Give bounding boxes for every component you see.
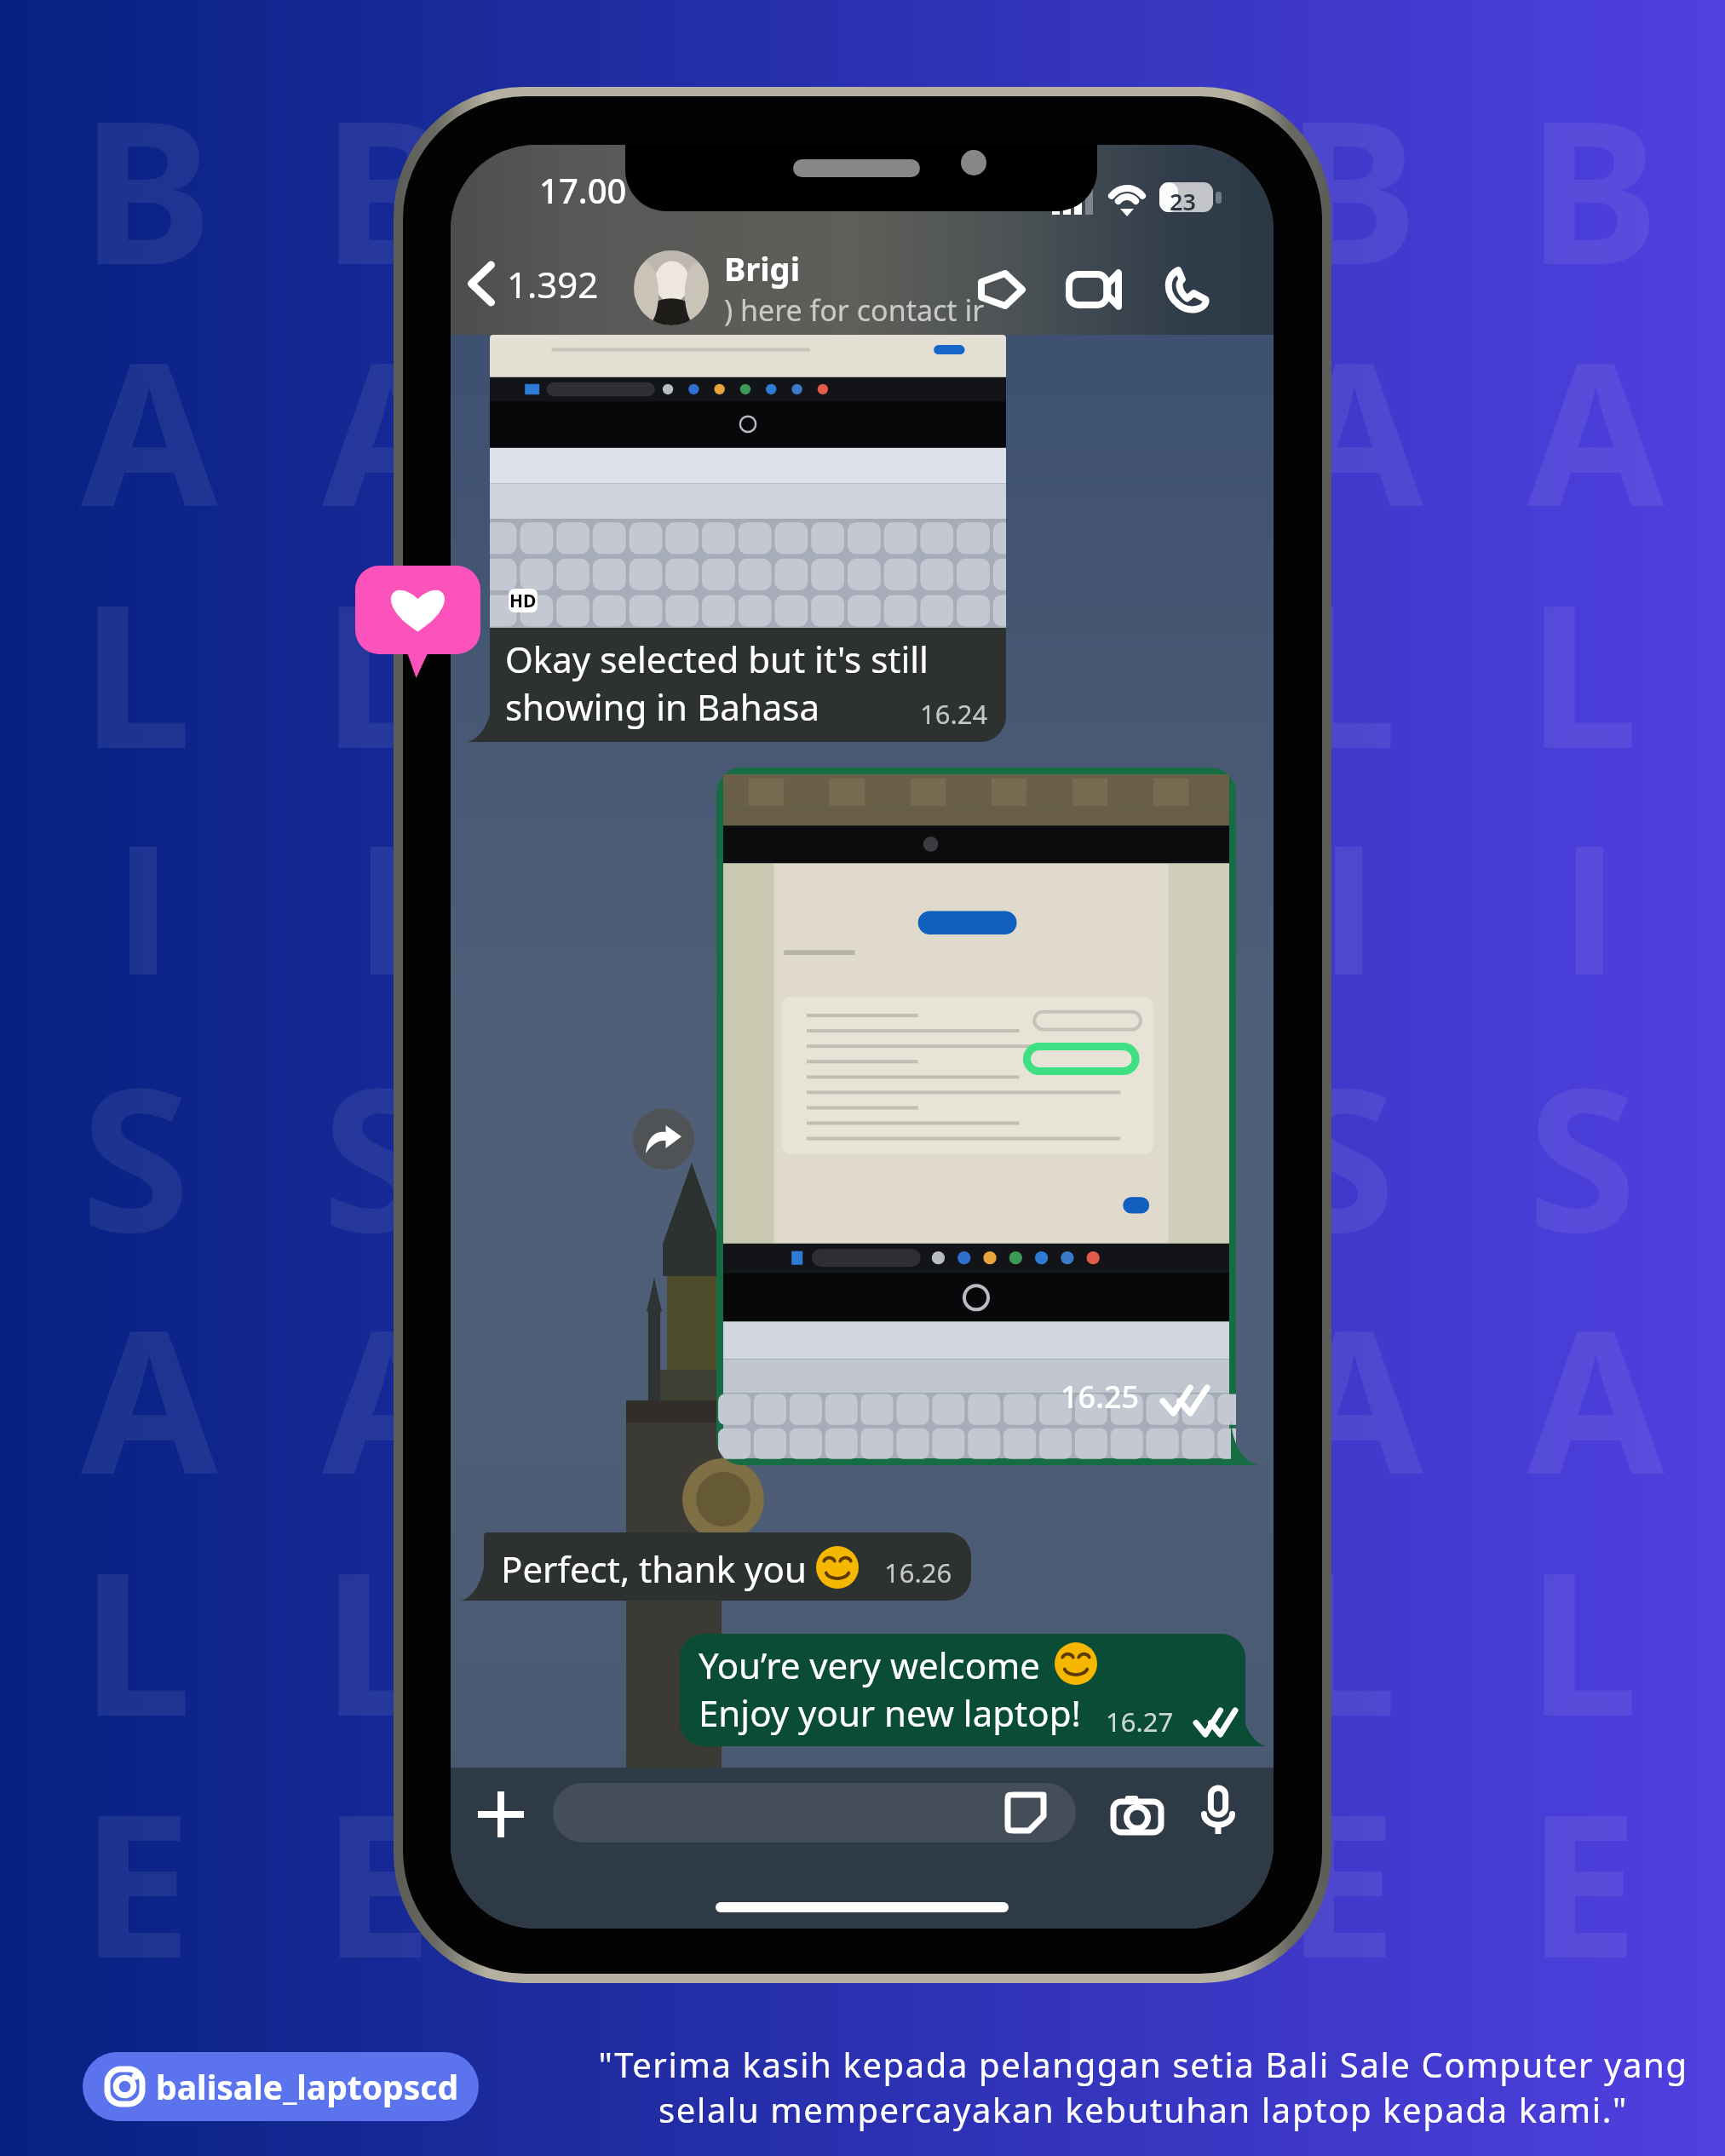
staticText: A [1286, 1262, 1423, 1484]
staticText: A [81, 1262, 218, 1484]
staticText: 16.24 [920, 696, 988, 732]
staticText: A [563, 295, 700, 516]
button[interactable]: Perfect, thank you [484, 1532, 971, 1601]
staticText: L [322, 537, 433, 758]
staticText: B [1286, 53, 1418, 274]
staticText: S [81, 1021, 190, 1242]
staticText: A [1527, 1262, 1665, 1484]
staticText: L [1045, 1504, 1156, 1726]
staticText: Brigi [724, 246, 800, 290]
staticText: balisale_laptopscd [156, 2064, 459, 2109]
staticText: You’re very welcome Enjoy your new lapto… [699, 1641, 1081, 1737]
staticText: E [1527, 1746, 1638, 1968]
staticText: B [322, 53, 454, 274]
staticText: A [804, 295, 941, 516]
staticText: E [81, 1746, 192, 1968]
staticText: A [804, 1262, 941, 1484]
button[interactable]: balisale_laptopscd [83, 2052, 479, 2121]
staticText: 17.00 [539, 167, 627, 213]
button[interactable]: Video call [1056, 259, 1130, 320]
staticText: S [322, 1021, 431, 1242]
staticText: 23 [1170, 186, 1196, 217]
staticText: S [563, 1021, 672, 1242]
staticText: A [563, 1262, 700, 1484]
staticText: L [563, 537, 674, 758]
button[interactable]: Like [355, 566, 480, 678]
staticText: S [1527, 1021, 1636, 1242]
staticText: 16.27 [1106, 1704, 1174, 1739]
staticText: L [81, 1504, 192, 1726]
button[interactable]: Brigi [634, 245, 985, 331]
staticText: Okay selected but it's still showing in … [505, 635, 929, 731]
staticText: HD [509, 589, 537, 612]
staticText: L [1286, 537, 1397, 758]
staticText: B [1045, 53, 1177, 274]
staticText: L [1527, 1504, 1638, 1726]
staticText: Perfect, thank you [501, 1544, 807, 1593]
button[interactable]: Labels [965, 259, 1037, 320]
staticText: A [322, 295, 459, 516]
staticText: A [1045, 295, 1182, 516]
button[interactable]: 16.25 [716, 768, 1236, 1465]
button[interactable]: Back to chats, 1.392 unread [457, 233, 609, 334]
staticText: 16.25 [1061, 1376, 1140, 1417]
staticText: L [804, 537, 915, 758]
staticText: E [1045, 1746, 1156, 1968]
button[interactable]: Stickers [1004, 1791, 1047, 1834]
staticText: B [81, 53, 213, 274]
staticText: B [804, 53, 936, 274]
button[interactable]: Voice call [1151, 257, 1221, 322]
staticText: A [1286, 295, 1423, 516]
staticText: L [81, 537, 192, 758]
staticText: L [804, 1504, 915, 1726]
button[interactable]: Voice message [1190, 1783, 1246, 1839]
staticText: S [1286, 1021, 1395, 1242]
staticText: E [804, 1746, 915, 1968]
button[interactable]: Camera [1107, 1785, 1167, 1844]
staticText: B [1527, 53, 1659, 274]
button[interactable]: Attach [473, 1786, 529, 1843]
staticText: E [563, 1746, 674, 1968]
staticText: S [1045, 1021, 1154, 1242]
staticText: A [1045, 1262, 1182, 1484]
staticText: A [322, 1262, 459, 1484]
button[interactable]: You’re very welcome Enjoy your new lapto… [680, 1634, 1245, 1746]
staticText: L [1527, 537, 1638, 758]
button[interactable]: Okay selected but it's still showing in … [490, 335, 1006, 742]
button[interactable]: Forward [633, 1108, 694, 1170]
staticText: B [563, 53, 695, 274]
staticText: E [1286, 1746, 1397, 1968]
staticText: L [322, 1504, 433, 1726]
staticText: ) here for contact ir [724, 290, 985, 330]
staticText: A [1527, 295, 1665, 516]
staticText: E [322, 1746, 433, 1968]
staticText: "Terima kasih kepada pelanggan setia Bal… [598, 2041, 1688, 2133]
staticText: 16.26 [884, 1555, 952, 1590]
staticText: L [563, 1504, 674, 1726]
staticText: A [81, 295, 218, 516]
staticText: S [804, 1021, 913, 1242]
staticText: 1.392 [507, 260, 599, 308]
staticText: L [1286, 1504, 1397, 1726]
button[interactable]: Stickers [553, 1783, 1076, 1843]
